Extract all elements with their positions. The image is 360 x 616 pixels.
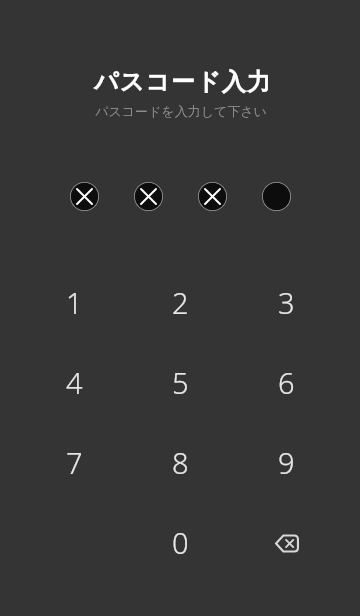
- button[interactable]: 3: [233, 262, 339, 342]
- staticText: 6: [278, 363, 295, 402]
- staticText: 3: [278, 283, 295, 322]
- staticText: 8: [172, 443, 189, 482]
- button[interactable]: 0: [127, 502, 233, 582]
- staticText: 5: [172, 363, 189, 402]
- staticText: パスコード入力: [94, 67, 272, 97]
- button[interactable]: 9: [233, 422, 339, 502]
- staticText: 0: [172, 523, 189, 562]
- button[interactable]: 8: [127, 422, 233, 502]
- staticText: 7: [66, 443, 83, 482]
- button[interactable]: 5: [127, 342, 233, 422]
- staticText: 2: [172, 283, 189, 322]
- button[interactable]: 4: [21, 342, 127, 422]
- staticText: 1: [66, 283, 83, 322]
- other: Passcode: 3 of 4 digits entered: [70, 182, 291, 211]
- button[interactable]: 7: [21, 422, 127, 502]
- staticText: 4: [66, 363, 83, 402]
- staticText: パスコードを入力して下さい: [95, 103, 267, 119]
- staticText: 9: [278, 443, 295, 482]
- button[interactable]: 2: [127, 262, 233, 342]
- button[interactable]: Delete: [233, 502, 339, 582]
- button[interactable]: 6: [233, 342, 339, 422]
- button[interactable]: 1: [21, 262, 127, 342]
